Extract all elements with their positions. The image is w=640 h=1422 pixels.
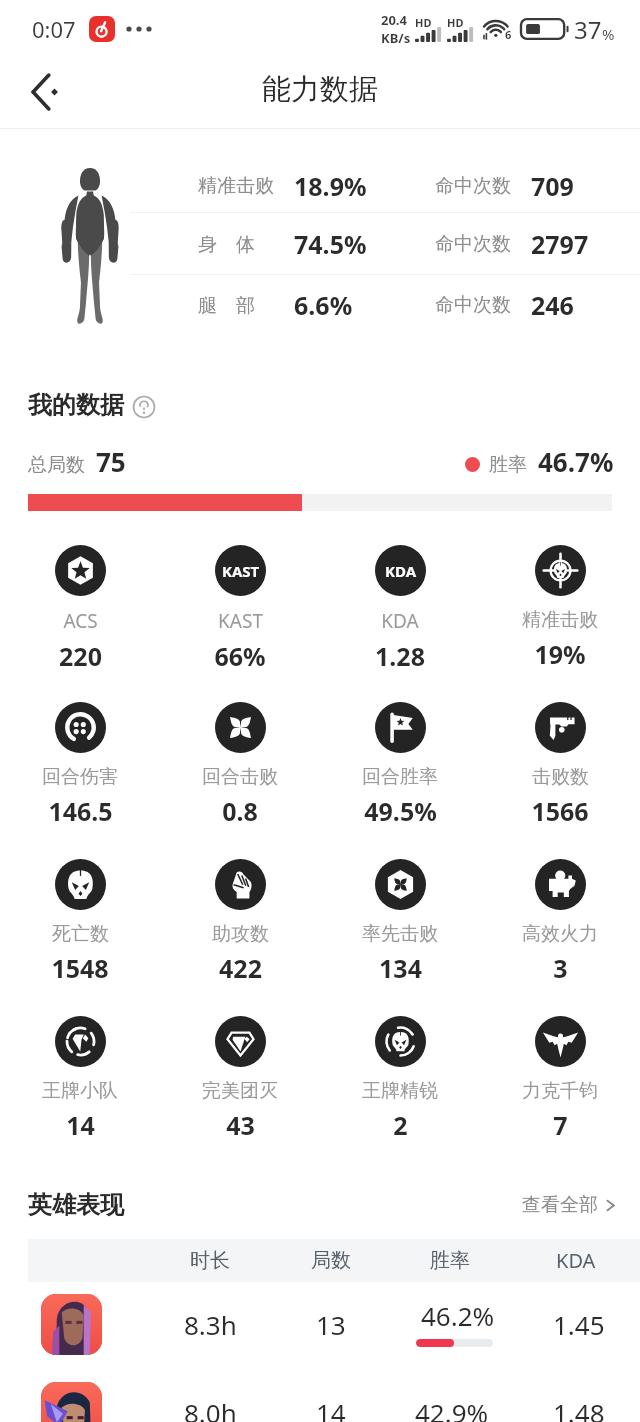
button[interactable]: ACS <box>0 545 160 673</box>
staticText: 回合击败 <box>202 765 278 789</box>
staticText: KB/s <box>381 29 411 47</box>
staticText: 身 体 <box>198 231 255 257</box>
staticText: 查看全部 <box>522 1193 598 1217</box>
button[interactable]: 力克千钧 <box>480 1016 640 1142</box>
button[interactable]: 回合击败 <box>160 702 320 828</box>
button[interactable]: 王牌精锐 <box>320 1016 480 1142</box>
staticText: KDA <box>385 561 417 581</box>
staticText: 42.9% <box>415 1395 489 1422</box>
staticText: 胜率 <box>430 1248 470 1273</box>
button[interactable]: KAST <box>160 545 320 673</box>
staticText: 8.3h <box>184 1307 237 1342</box>
staticText: 74.5% <box>294 227 367 261</box>
staticText: 37 <box>574 13 602 46</box>
button[interactable]: 完美团灭 <box>160 1016 320 1142</box>
staticText: 回合伤害 <box>42 765 118 789</box>
staticText: 胜率 <box>489 453 527 477</box>
staticText: 14 <box>316 1395 346 1422</box>
staticText: 2797 <box>531 227 589 261</box>
staticText: 1.45 <box>553 1307 605 1342</box>
staticText: ACS <box>63 608 98 634</box>
staticText: 腿 部 <box>198 292 255 318</box>
staticText: 局数 <box>311 1248 351 1273</box>
staticText: HD <box>415 15 432 30</box>
staticText: 220 <box>59 639 102 673</box>
staticText: 18.9% <box>294 169 367 203</box>
staticText: 高效火力 <box>522 922 598 946</box>
button[interactable]: KDA <box>320 545 480 673</box>
staticText: 王牌小队 <box>42 1079 118 1103</box>
staticText: 总局数 <box>28 453 85 477</box>
button[interactable]: 死亡数 <box>0 859 160 985</box>
staticText: 49.5% <box>364 794 437 828</box>
staticText: 0.8 <box>222 794 258 828</box>
button[interactable]: 击败数 <box>480 702 640 828</box>
staticText: 246 <box>531 288 574 322</box>
button[interactable]: Help <box>132 395 156 419</box>
staticText: 19% <box>534 637 586 671</box>
staticText: 助攻数 <box>212 922 269 946</box>
staticText: 1548 <box>51 951 109 985</box>
staticText: KDA <box>381 608 419 634</box>
staticText: 3 <box>553 951 568 985</box>
staticText: 2 <box>393 1108 408 1142</box>
staticText: 命中次数 <box>435 293 511 317</box>
staticText: 1566 <box>531 794 589 828</box>
staticText: 击败数 <box>532 765 589 789</box>
staticText: 134 <box>379 951 422 985</box>
button[interactable]: 查看全部 <box>522 1193 618 1217</box>
staticText: 8.0h <box>184 1395 237 1422</box>
button[interactable]: 王牌小队 <box>0 1016 160 1142</box>
staticText: % <box>602 24 615 44</box>
staticText: 命中次数 <box>435 174 511 198</box>
staticText: 13 <box>316 1307 346 1342</box>
staticText: 回合胜率 <box>362 765 438 789</box>
staticText: 14 <box>66 1108 95 1142</box>
button[interactable]: Back <box>17 61 79 123</box>
staticText: 7 <box>553 1108 568 1142</box>
staticText: 精准击败 <box>522 608 598 632</box>
staticText: HD <box>447 15 464 30</box>
staticText: 146.5 <box>48 794 113 828</box>
staticText: KAST <box>222 561 260 581</box>
staticText: 完美团灭 <box>202 1079 278 1103</box>
staticText: 率先击败 <box>362 922 438 946</box>
staticText: 我的数据 <box>28 390 124 420</box>
staticText: 20.4 <box>381 11 407 29</box>
button[interactable]: 精准击败 <box>480 545 640 671</box>
staticText: 时长 <box>190 1248 230 1273</box>
staticText: 1.28 <box>375 639 425 673</box>
button[interactable]: 回合胜率 <box>320 702 480 828</box>
staticText: 0:07 <box>32 14 76 44</box>
staticText: 力克千钧 <box>522 1079 598 1103</box>
staticText: 46.2% <box>421 1298 495 1333</box>
button[interactable]: 高效火力 <box>480 859 640 985</box>
button[interactable]: 回合伤害 <box>0 702 160 828</box>
staticText: 英雄表现 <box>28 1190 124 1220</box>
staticText: 6 <box>505 27 512 42</box>
staticText: 能力数据 <box>262 71 378 108</box>
button[interactable]: 助攻数 <box>160 859 320 985</box>
staticText: 6.6% <box>294 288 353 322</box>
button[interactable]: 8.3h <box>0 1294 640 1372</box>
staticText: 王牌精锐 <box>362 1079 438 1103</box>
staticText: 75 <box>96 444 126 479</box>
button[interactable]: 8.0h <box>0 1382 640 1422</box>
staticText: 命中次数 <box>435 232 511 256</box>
staticText: 1.48 <box>553 1395 605 1422</box>
staticText: 死亡数 <box>52 922 109 946</box>
staticText: 422 <box>219 951 262 985</box>
staticText: 46.7% <box>538 444 614 479</box>
staticText: 709 <box>531 169 574 203</box>
staticText: 66% <box>214 639 266 673</box>
staticText: 精准击败 <box>198 174 274 198</box>
staticText: KDA <box>556 1247 596 1274</box>
staticText: 43 <box>226 1108 255 1142</box>
staticText: KAST <box>218 608 263 634</box>
button[interactable]: 率先击败 <box>320 859 480 985</box>
